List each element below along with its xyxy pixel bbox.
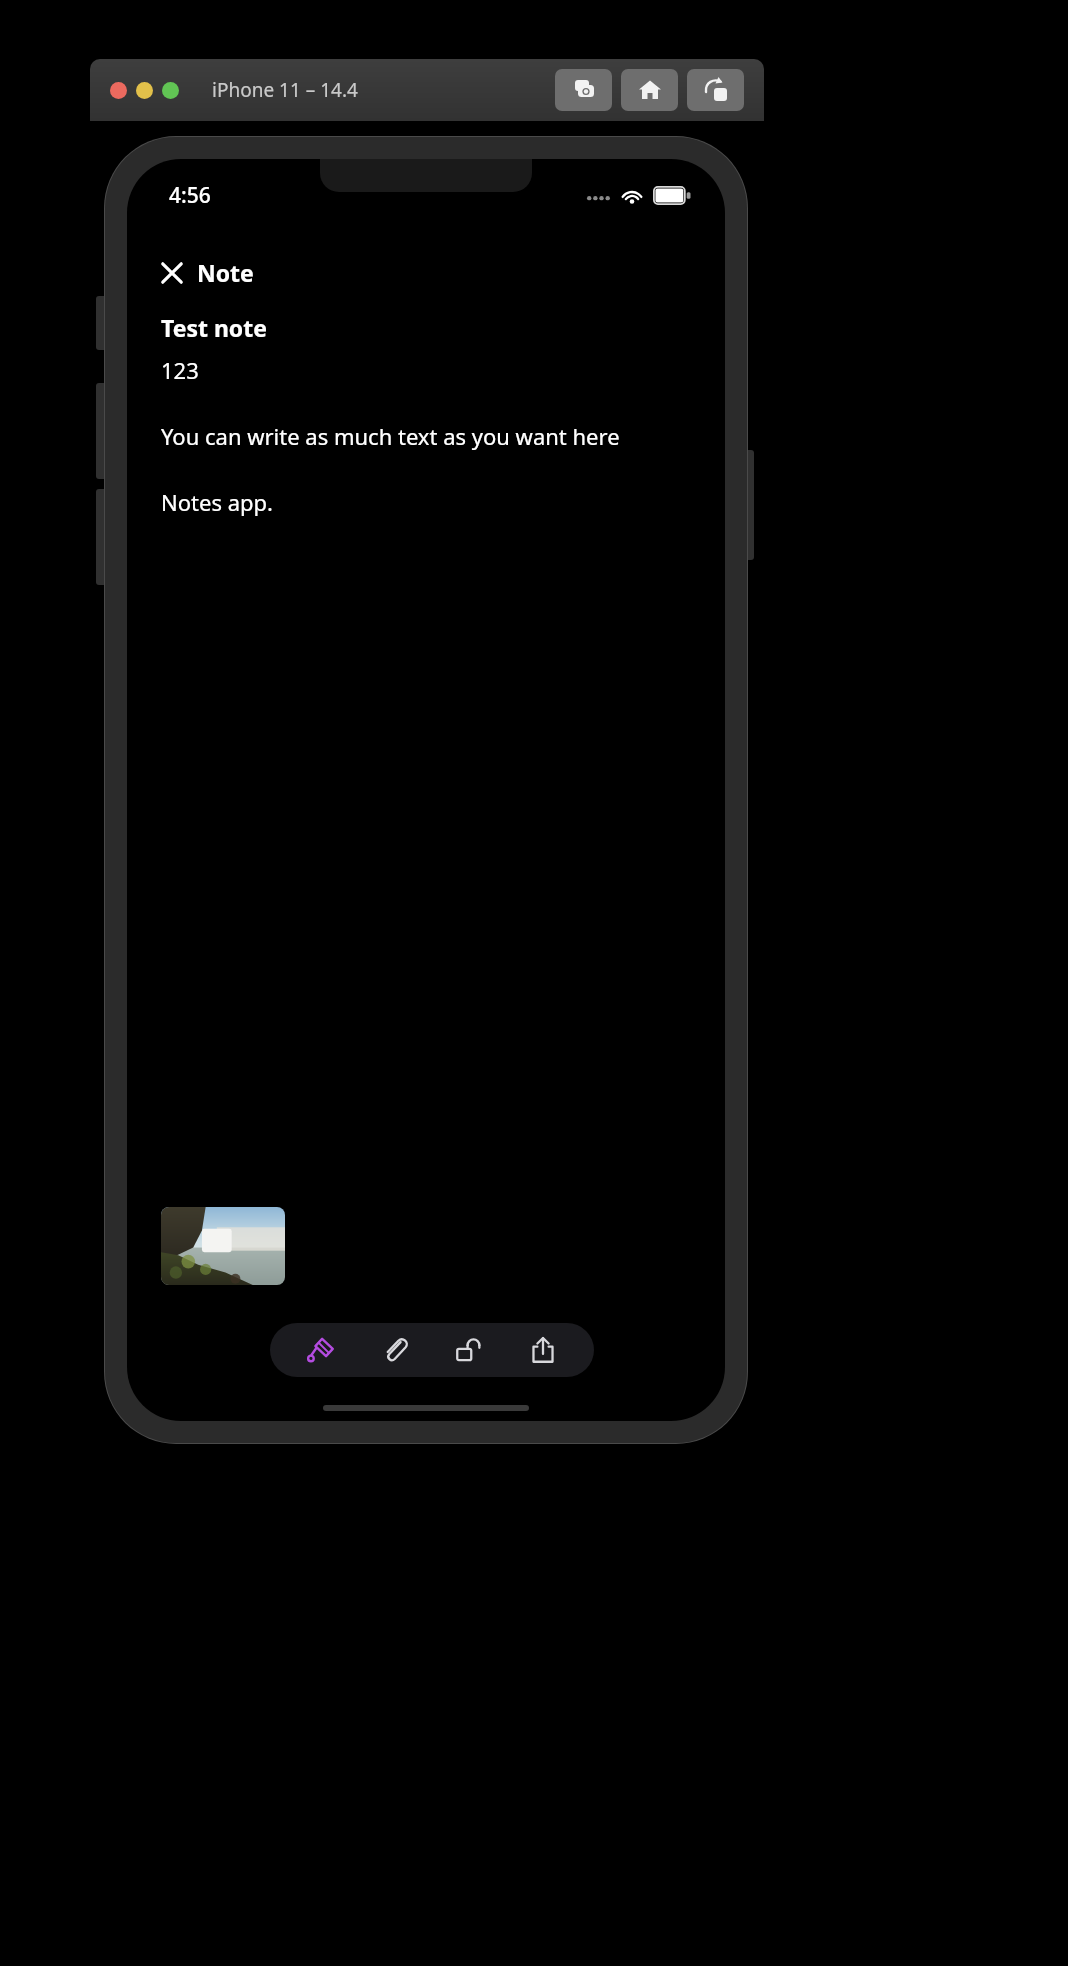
button[interactable]: Attach file [358,1323,432,1377]
staticText: 4:56 [169,181,211,210]
staticText: You can write as much text as you want h… [161,421,620,451]
staticText: Test note [161,312,267,343]
button[interactable]: Home [621,69,678,111]
button[interactable]: Zoom [162,82,179,99]
staticText: 123 [161,355,199,385]
button[interactable]: Attached photo [161,1207,285,1285]
staticText: Notes app. [161,487,273,517]
button[interactable]: Close note [161,255,254,290]
button[interactable]: Draw [284,1323,358,1377]
button[interactable]: Screenshot [555,69,612,111]
button[interactable]: Share [506,1323,580,1377]
staticText: iPhone 11 – 14.4 [212,77,358,103]
staticText: Note [197,257,254,288]
button[interactable]: Lock note [432,1323,506,1377]
button[interactable]: Minimize [136,82,153,99]
button[interactable]: Close [110,82,127,99]
button[interactable]: Rotate [687,69,744,111]
